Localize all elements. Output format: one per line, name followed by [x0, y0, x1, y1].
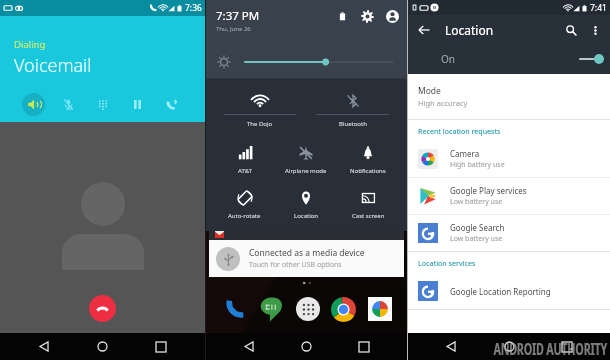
staticText: 7:41 — [590, 2, 607, 14]
button[interactable]: End call — [89, 295, 116, 322]
button[interactable]: Recents — [350, 333, 377, 360]
button[interactable]: Mute — [57, 93, 80, 116]
button[interactable]: Location — [275, 189, 337, 227]
button[interactable]: Back — [413, 19, 435, 41]
staticText: High battery use — [450, 160, 505, 170]
button[interactable]: Back — [236, 333, 263, 360]
button[interactable]: Home — [293, 333, 320, 360]
button[interactable]: Back — [31, 333, 58, 360]
staticText: Location — [294, 212, 319, 220]
button[interactable]: Google Location Reporting — [408, 273, 610, 309]
staticText: ANDROID AUTHORITY — [493, 339, 607, 359]
button[interactable]: AT&T — [214, 144, 275, 182]
button[interactable]: More options — [585, 20, 605, 40]
staticText: Camera — [450, 148, 480, 159]
button[interactable]: Connected as a media device — [209, 240, 404, 277]
button[interactable]: Photos — [367, 296, 393, 322]
button[interactable]: Chrome — [330, 296, 356, 322]
button[interactable]: On — [408, 44, 610, 74]
staticText: Thu, June 26 — [216, 25, 251, 33]
button[interactable]: The Dojo — [224, 91, 296, 135]
button[interactable]: Hold — [126, 93, 149, 116]
staticText: AT&T — [238, 167, 252, 175]
button[interactable]: Messenger — [259, 296, 285, 322]
staticText: Low battery use — [450, 197, 503, 207]
staticText: Dialing — [14, 38, 46, 51]
button[interactable]: Google Play services — [408, 178, 610, 214]
button[interactable]: Google Search — [408, 215, 610, 251]
button[interactable]: Home — [496, 333, 523, 360]
button[interactable]: Back — [438, 333, 465, 360]
button[interactable]: Home — [89, 333, 116, 360]
button[interactable]: Airplane mode — [275, 144, 337, 182]
staticText: High accuracy — [418, 98, 468, 108]
staticText: Google Play services — [450, 185, 527, 196]
staticText: On — [441, 52, 455, 66]
staticText: Google Location Reporting — [450, 286, 551, 297]
button[interactable]: Recents — [553, 333, 580, 360]
button[interactable]: Bluetooth — [316, 91, 389, 135]
button[interactable]: Notifications — [337, 144, 399, 182]
staticText: The Dojo — [247, 120, 273, 128]
button[interactable]: Camera — [408, 141, 610, 177]
button[interactable]: User — [384, 8, 400, 24]
staticText: Low battery use — [450, 234, 503, 244]
button[interactable]: Apps — [296, 297, 320, 321]
staticText: Voicemail — [14, 53, 92, 78]
staticText: 7:36 — [185, 2, 202, 14]
button[interactable]: Recents — [147, 333, 174, 360]
staticText: Airplane mode — [285, 167, 327, 175]
button[interactable]: Add call — [160, 93, 183, 116]
staticText: Recent location requests — [418, 127, 501, 137]
button[interactable]: Search — [560, 19, 582, 41]
staticText: Location services — [418, 259, 476, 269]
button[interactable]: Cast screen — [337, 189, 399, 227]
staticText: Touch for other USB options — [249, 260, 342, 270]
button[interactable]: Battery — [334, 8, 350, 24]
staticText: Auto-rotate — [228, 212, 261, 220]
staticText: Connected as a media device — [249, 247, 365, 259]
staticText: Notifications — [350, 167, 386, 175]
staticText: 7:37 PM — [216, 8, 260, 24]
button[interactable]: Phone — [220, 295, 248, 323]
staticText: Bluetooth — [339, 120, 367, 128]
button[interactable]: Mode — [408, 85, 610, 108]
staticText: Google Search — [450, 222, 505, 233]
button[interactable]: Dialpad — [91, 93, 114, 116]
staticText: Location — [445, 22, 494, 38]
button[interactable]: Speaker — [22, 93, 45, 116]
button[interactable]: Auto-rotate — [214, 189, 275, 227]
staticText: Cast screen — [352, 212, 385, 220]
button[interactable]: Settings — [359, 8, 375, 24]
staticText: Mode — [418, 85, 441, 97]
